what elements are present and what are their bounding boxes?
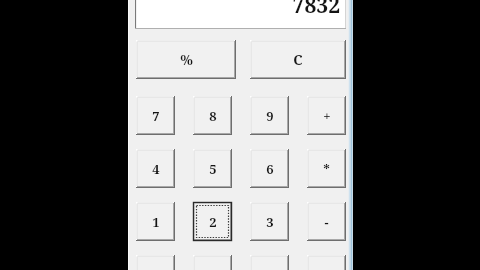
button[interactable]: / <box>307 255 346 270</box>
staticText: * <box>323 160 330 178</box>
button[interactable]: 6 <box>250 149 289 188</box>
staticText: + <box>323 107 331 125</box>
button[interactable]: 0 <box>136 255 175 270</box>
button[interactable]: 4 <box>136 149 175 188</box>
button[interactable]: 3 <box>250 202 289 241</box>
staticText: 5 <box>209 160 217 178</box>
button[interactable]: C <box>250 40 346 79</box>
staticText: 7832 <box>292 0 340 20</box>
button[interactable]: 5 <box>193 149 232 188</box>
button[interactable]: 7 <box>136 96 175 135</box>
staticText: 1 <box>152 213 160 231</box>
button[interactable]: 9 <box>250 96 289 135</box>
staticText: 2 <box>209 213 217 231</box>
staticText: C <box>293 50 303 69</box>
button[interactable]: % <box>136 40 236 79</box>
staticText: % <box>180 50 193 69</box>
staticText: 4 <box>152 160 160 178</box>
staticText: 6 <box>266 160 274 178</box>
button[interactable]: 8 <box>193 96 232 135</box>
button[interactable]: = <box>250 255 289 270</box>
staticText: 3 <box>266 213 274 231</box>
button[interactable]: + <box>307 96 346 135</box>
button[interactable]: . <box>193 255 232 270</box>
button[interactable]: 2 <box>193 202 232 241</box>
staticText: 8 <box>209 107 217 125</box>
button[interactable]: 1 <box>136 202 175 241</box>
button[interactable]: * <box>307 149 346 188</box>
staticText: 9 <box>266 107 274 125</box>
staticText: - <box>324 213 329 231</box>
button[interactable]: - <box>307 202 346 241</box>
staticText: 7 <box>152 107 160 125</box>
